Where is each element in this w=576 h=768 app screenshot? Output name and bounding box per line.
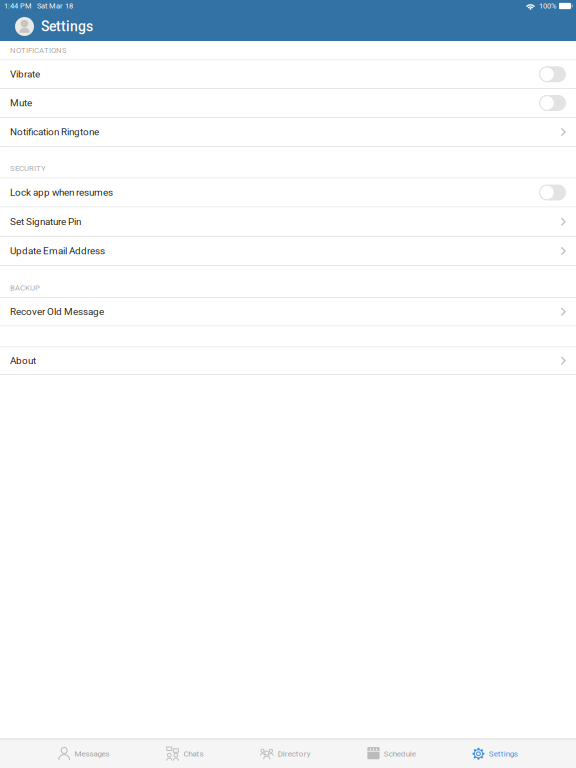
staticText: BACKUP — [10, 283, 40, 292]
staticText: Settings — [41, 18, 93, 35]
staticText: Update Email Address — [10, 245, 105, 257]
staticText: Directory — [278, 749, 311, 758]
staticText: Lock app when resumes — [10, 187, 113, 198]
button[interactable]: Update Email Address — [0, 237, 576, 266]
staticText: Vibrate — [10, 68, 40, 80]
staticText: SECURITY — [10, 164, 46, 173]
button[interactable]: Chats — [166, 746, 203, 761]
staticText: About — [10, 355, 36, 367]
staticText: Schedule — [384, 749, 416, 758]
staticText: Chats — [183, 749, 203, 758]
button[interactable]: Settings — [472, 748, 518, 760]
button[interactable]: Messages — [58, 747, 109, 760]
staticText: Mute — [10, 97, 32, 109]
staticText: Messages — [74, 749, 109, 758]
button[interactable]: Mute — [0, 89, 576, 118]
staticText: Set Signature Pin — [10, 216, 81, 228]
button[interactable]: Notification Ringtone — [0, 118, 576, 147]
staticText: 1:44 PM — [4, 2, 32, 10]
button[interactable]: Lock app when resumes — [0, 178, 576, 207]
staticText: Sat Mar 18 — [37, 2, 73, 10]
staticText: 100% — [539, 2, 556, 10]
staticText: Recover Old Message — [10, 306, 104, 318]
button[interactable]: About — [0, 347, 576, 375]
staticText: Notification Ringtone — [10, 126, 99, 138]
staticText: NOTIFICATIONS — [10, 46, 67, 55]
button[interactable]: Schedule — [367, 747, 416, 760]
button[interactable]: Recover Old Message — [0, 298, 576, 326]
button[interactable]: Directory — [260, 747, 311, 760]
button[interactable]: Profile — [15, 17, 34, 36]
staticText: Settings — [489, 749, 518, 758]
button[interactable]: Set Signature Pin — [0, 207, 576, 237]
button[interactable]: Vibrate — [0, 60, 576, 89]
